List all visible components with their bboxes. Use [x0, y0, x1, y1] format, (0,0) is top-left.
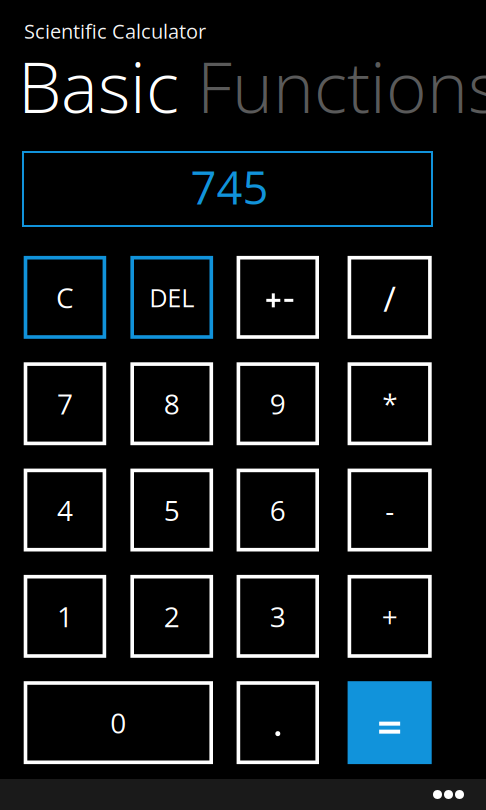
staticText: 1: [57, 597, 73, 635]
button[interactable]: [237, 256, 319, 339]
staticText: 745: [190, 156, 268, 218]
button[interactable]: 4: [24, 469, 106, 551]
staticText: /: [383, 275, 396, 322]
staticText: 5: [164, 491, 180, 529]
button[interactable]: 9: [237, 362, 319, 445]
button[interactable]: 5: [130, 469, 213, 551]
staticText: 6: [270, 491, 286, 529]
button[interactable]: 8: [130, 362, 213, 445]
button[interactable]: 7: [24, 362, 106, 445]
staticText: Functions: [197, 39, 486, 133]
staticText: DEL: [149, 280, 194, 315]
button[interactable]: /: [348, 256, 432, 339]
staticText: *: [382, 385, 397, 423]
staticText: Scientific Calculator: [24, 17, 206, 45]
button[interactable]: *: [348, 362, 432, 445]
button[interactable]: 1: [24, 575, 106, 658]
button[interactable]: 0: [24, 681, 213, 764]
staticText: 7: [57, 385, 73, 423]
button[interactable]: +: [348, 575, 432, 658]
staticText: -: [385, 491, 394, 529]
button[interactable]: -: [348, 469, 432, 551]
staticText: 9: [270, 385, 286, 423]
button[interactable]: 3: [237, 575, 319, 658]
staticText: 4: [57, 491, 73, 529]
button[interactable]: DEL: [130, 256, 213, 339]
button[interactable]: [237, 681, 319, 764]
staticText: 3: [270, 597, 286, 635]
button[interactable]: 6: [237, 469, 319, 551]
staticText: +: [382, 597, 398, 635]
staticText: 2: [164, 597, 180, 635]
staticText: Basic: [18, 39, 179, 133]
staticText: 8: [164, 385, 180, 423]
staticText: C: [56, 278, 74, 316]
staticText: 0: [110, 704, 126, 742]
button[interactable]: More options: [413, 779, 486, 810]
button[interactable]: [348, 681, 432, 764]
button[interactable]: 2: [130, 575, 213, 658]
button[interactable]: C: [24, 256, 106, 339]
